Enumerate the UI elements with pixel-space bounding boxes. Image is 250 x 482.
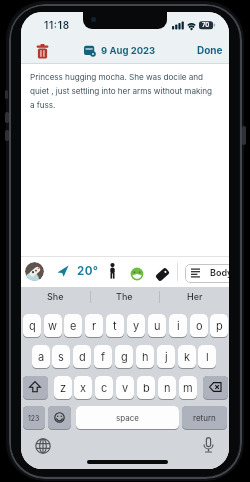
staticText: 20°	[77, 264, 99, 278]
button[interactable]	[169, 314, 187, 338]
staticText: t	[113, 319, 117, 332]
staticText: 123	[28, 414, 40, 422]
button[interactable]: Body	[185, 264, 229, 283]
button[interactable]	[203, 376, 228, 400]
button[interactable]	[155, 267, 170, 282]
button[interactable]	[54, 376, 72, 400]
staticText: Her	[187, 291, 203, 302]
staticText: Princess hugging mocha. She was docile a…	[30, 72, 213, 110]
staticText: The	[116, 291, 133, 302]
staticText: c	[101, 381, 108, 394]
button[interactable]	[158, 376, 176, 400]
button[interactable]	[157, 345, 175, 369]
button[interactable]	[36, 44, 49, 59]
button[interactable]	[127, 314, 145, 338]
staticText: o	[196, 319, 203, 332]
staticText: return	[193, 413, 216, 423]
button[interactable]	[182, 406, 227, 430]
button[interactable]	[57, 265, 69, 277]
button[interactable]	[116, 376, 134, 400]
staticText: m	[183, 381, 193, 394]
staticText: s	[58, 350, 64, 363]
button[interactable]	[179, 376, 197, 400]
button[interactable]	[52, 345, 70, 369]
staticText: j	[165, 350, 168, 363]
button[interactable]	[94, 345, 112, 369]
staticText: i	[177, 319, 180, 332]
staticText: 11:18	[44, 19, 70, 31]
staticText: g	[121, 350, 128, 363]
button[interactable]	[73, 345, 91, 369]
button[interactable]	[64, 314, 82, 338]
staticText: n	[164, 381, 171, 394]
button[interactable]	[108, 263, 117, 279]
staticText: p	[216, 319, 223, 332]
button[interactable]	[203, 437, 214, 454]
button[interactable]	[44, 314, 62, 338]
button[interactable]	[137, 376, 155, 400]
button[interactable]	[136, 345, 154, 369]
staticText: e	[70, 319, 77, 332]
staticText: Done	[197, 44, 223, 56]
staticText: v	[122, 381, 129, 394]
staticText: b	[143, 381, 150, 394]
staticText: k	[184, 350, 191, 363]
button[interactable]	[35, 438, 51, 454]
button[interactable]	[193, 41, 225, 63]
staticText: z	[60, 381, 67, 394]
staticText: She	[47, 291, 64, 302]
staticText: space	[116, 413, 139, 423]
button[interactable]	[148, 314, 166, 338]
staticText: f	[101, 350, 106, 363]
button[interactable]: She	[21, 289, 90, 304]
staticText: w	[48, 319, 58, 332]
button[interactable]	[95, 376, 113, 400]
staticText: y	[133, 319, 140, 332]
button[interactable]	[23, 314, 41, 338]
button[interactable]	[25, 262, 44, 281]
button[interactable]	[210, 314, 228, 338]
button[interactable]	[106, 314, 124, 338]
staticText: 9 Aug 2023	[101, 45, 156, 56]
staticText: u	[154, 319, 161, 332]
button[interactable]	[48, 406, 71, 430]
button[interactable]: Her	[160, 289, 229, 304]
staticText: a	[38, 350, 45, 363]
button[interactable]	[32, 345, 50, 369]
button[interactable]	[190, 314, 208, 338]
staticText: q	[29, 319, 36, 332]
staticText: l	[206, 350, 209, 363]
button[interactable]	[115, 345, 133, 369]
button[interactable]: The	[90, 289, 159, 304]
staticText: h	[142, 350, 149, 363]
button[interactable]	[198, 345, 216, 369]
button[interactable]	[23, 376, 48, 400]
button[interactable]	[23, 406, 45, 430]
button[interactable]	[81, 42, 181, 62]
button[interactable]	[130, 267, 144, 281]
staticText: x	[80, 381, 87, 394]
button[interactable]	[178, 345, 196, 369]
button[interactable]	[74, 376, 92, 400]
button[interactable]	[76, 406, 179, 430]
staticText: d	[79, 350, 86, 363]
staticText: r	[92, 319, 97, 332]
staticText: Body	[210, 267, 229, 278]
staticText: 70	[202, 21, 210, 28]
button[interactable]	[85, 314, 103, 338]
